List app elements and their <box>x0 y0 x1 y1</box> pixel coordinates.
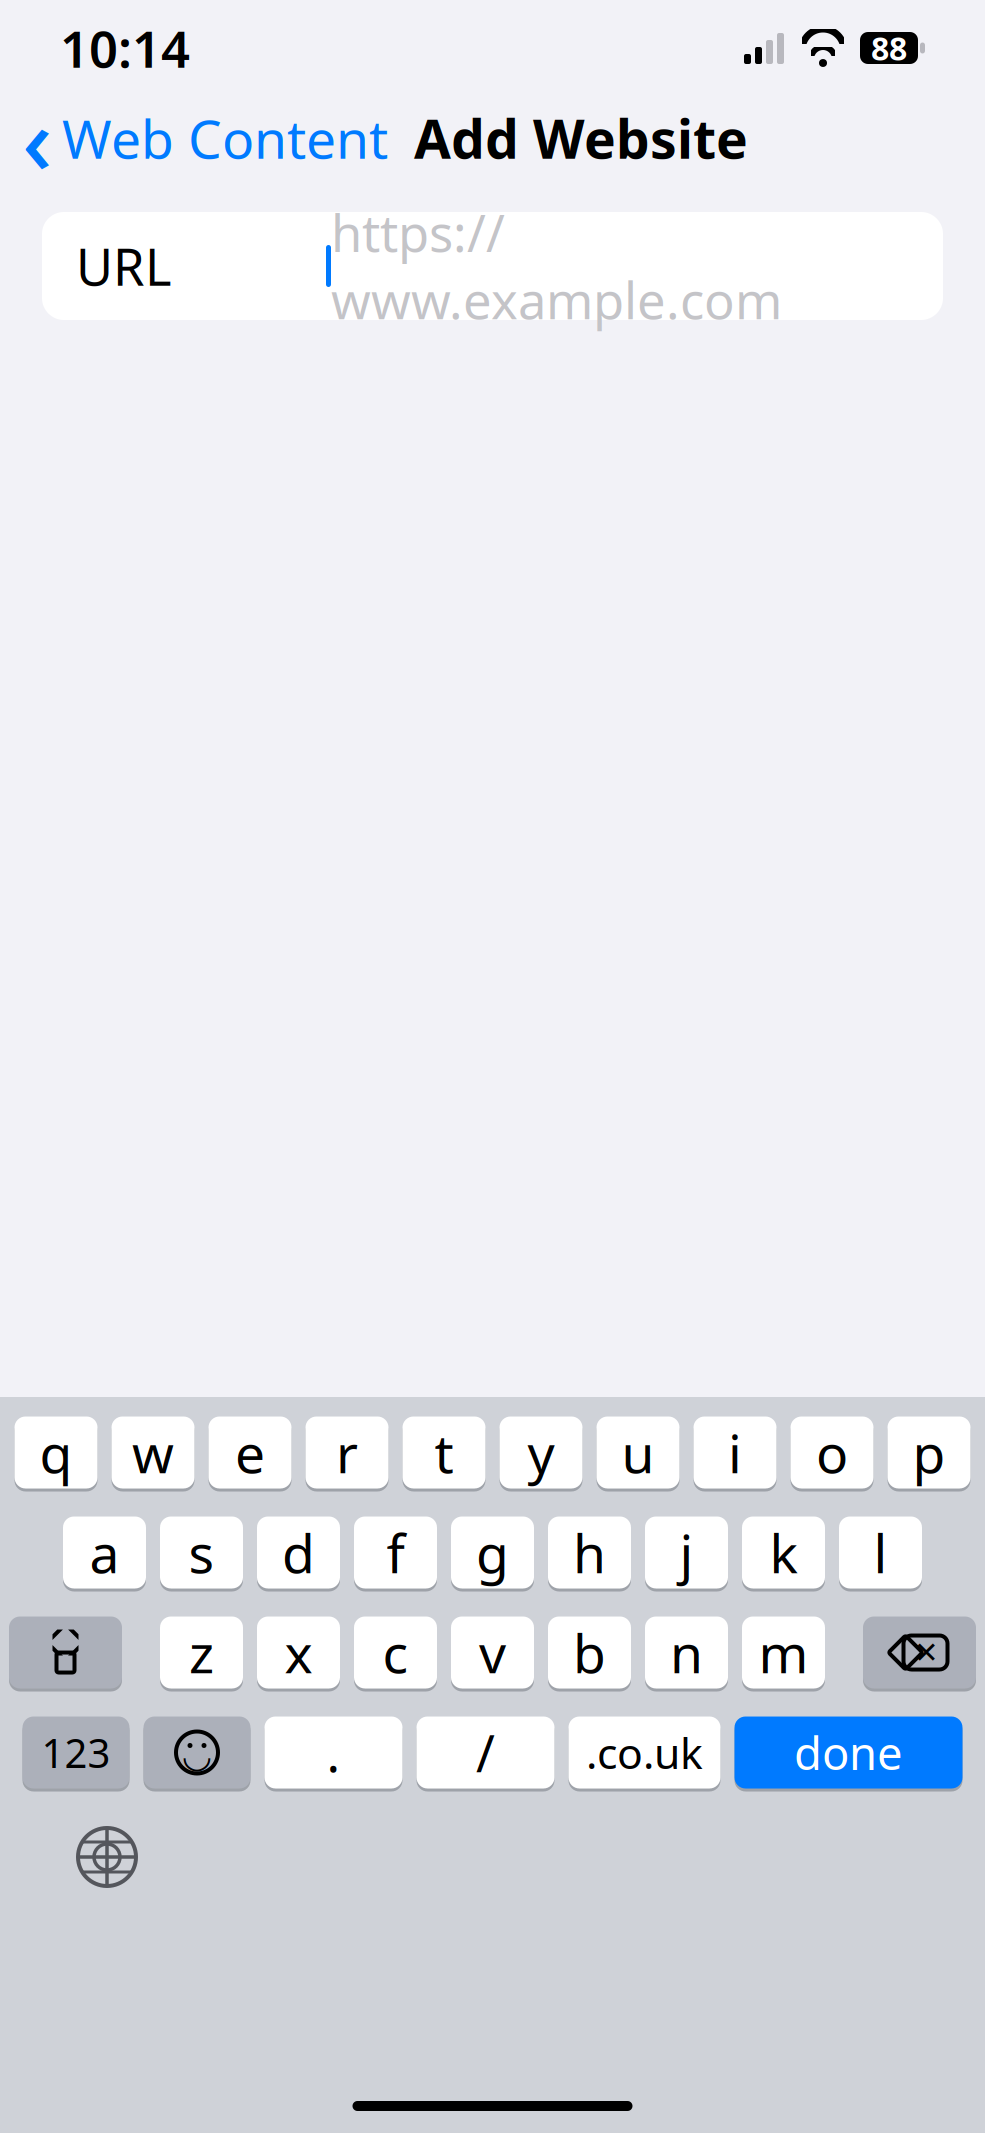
staticText: n <box>670 1617 703 1688</box>
staticText: URL <box>76 232 172 300</box>
button[interactable]: q <box>14 1415 97 1490</box>
button[interactable]: Slash <box>416 1715 554 1790</box>
staticText: ‹ <box>22 76 52 200</box>
button[interactable]: .co.uk <box>568 1715 720 1790</box>
staticText: c <box>382 1617 408 1688</box>
staticText: m <box>758 1617 808 1688</box>
staticText: o <box>816 1417 848 1488</box>
staticText: s <box>188 1517 214 1588</box>
button[interactable]: c <box>354 1615 437 1690</box>
staticText: k <box>769 1517 797 1588</box>
staticText: 88 <box>871 27 907 69</box>
staticText: f <box>386 1517 404 1588</box>
staticText: y <box>527 1417 554 1488</box>
button[interactable]: z <box>160 1615 243 1690</box>
button[interactable]: l <box>839 1515 922 1590</box>
button[interactable]: Next keyboard <box>58 1808 156 1906</box>
staticText: w <box>132 1417 174 1488</box>
staticText: ✕ <box>914 1636 939 1669</box>
staticText: 123 <box>41 1726 110 1779</box>
staticText: . <box>326 1719 340 1786</box>
button[interactable]: Delete <box>863 1615 976 1690</box>
staticText: j <box>679 1517 693 1588</box>
button[interactable]: Emoji <box>143 1715 250 1790</box>
button[interactable]: p <box>887 1415 970 1490</box>
staticText: t <box>434 1417 453 1488</box>
button[interactable]: o <box>790 1415 873 1490</box>
button[interactable]: n <box>645 1615 728 1690</box>
staticText: x <box>284 1617 312 1688</box>
button[interactable]: a <box>63 1515 146 1590</box>
button[interactable]: f <box>354 1515 437 1590</box>
staticText: d <box>282 1517 315 1588</box>
staticText: v <box>479 1617 506 1688</box>
button[interactable]: s <box>160 1515 243 1590</box>
staticText: Add Website <box>414 103 748 173</box>
staticText: done <box>794 1722 903 1783</box>
staticText: a <box>89 1517 119 1588</box>
staticText: e <box>235 1417 265 1488</box>
button[interactable]: y <box>499 1415 582 1490</box>
button[interactable]: done <box>734 1715 962 1790</box>
staticText: b <box>573 1617 606 1688</box>
staticText: / <box>476 1719 495 1786</box>
button[interactable]: j <box>645 1515 728 1590</box>
staticText: i <box>728 1417 742 1488</box>
staticText: https://www.example.com <box>331 199 782 333</box>
staticText: u <box>621 1417 654 1488</box>
button[interactable]: e <box>208 1415 291 1490</box>
button[interactable]: r <box>305 1415 388 1490</box>
button[interactable]: k <box>742 1515 825 1590</box>
button[interactable]: m <box>742 1615 825 1690</box>
staticText: r <box>336 1417 358 1488</box>
staticText: l <box>873 1517 887 1588</box>
staticText: q <box>39 1417 72 1488</box>
button[interactable]: Shift <box>9 1615 122 1690</box>
staticText: h <box>573 1517 606 1588</box>
button[interactable]: t <box>402 1415 485 1490</box>
button[interactable]: u <box>596 1415 679 1490</box>
staticText: Web Content <box>62 103 388 173</box>
button[interactable]: Period <box>264 1715 402 1790</box>
staticText: p <box>912 1417 945 1488</box>
staticText: z <box>189 1617 214 1688</box>
button[interactable]: i <box>693 1415 776 1490</box>
button[interactable]: g <box>451 1515 534 1590</box>
staticText: 10:14 <box>60 14 190 82</box>
button[interactable]: URL <box>42 212 943 320</box>
button[interactable]: w <box>111 1415 194 1490</box>
button[interactable]: b <box>548 1615 631 1690</box>
staticText: .co.uk <box>586 1724 703 1781</box>
staticText: g <box>476 1517 509 1588</box>
button[interactable]: Numbers and symbols <box>22 1715 129 1790</box>
staticText: ◡ <box>183 1736 210 1775</box>
button[interactable]: v <box>451 1615 534 1690</box>
button[interactable]: d <box>257 1515 340 1590</box>
button[interactable]: x <box>257 1615 340 1690</box>
button[interactable]: Back to Web Content <box>22 103 396 173</box>
button[interactable]: h <box>548 1515 631 1590</box>
